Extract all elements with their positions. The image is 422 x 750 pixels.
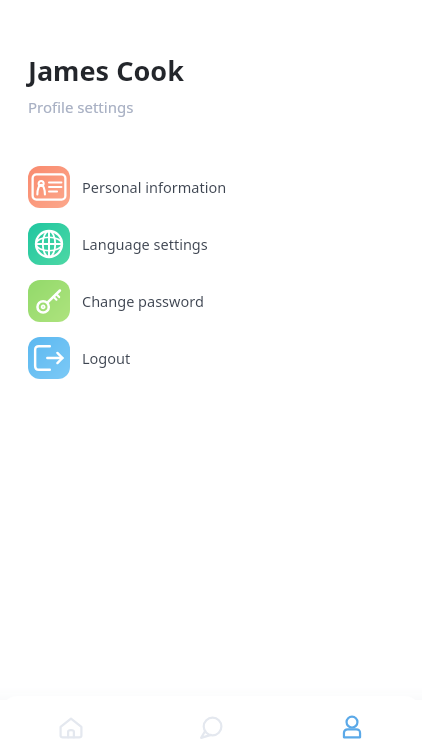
staticText: Language settings bbox=[82, 234, 208, 254]
button[interactable]: Home bbox=[1, 703, 141, 750]
staticText: Change password bbox=[82, 291, 204, 311]
button[interactable]: Personal information bbox=[0, 158, 422, 215]
button[interactable]: Language settings bbox=[0, 215, 422, 272]
button[interactable]: Messages bbox=[141, 703, 281, 750]
staticText: Logout bbox=[82, 348, 131, 368]
staticText: Profile settings bbox=[28, 97, 134, 117]
button[interactable]: Logout bbox=[0, 329, 422, 386]
staticText: James Cook bbox=[28, 52, 184, 89]
button[interactable]: Profile bbox=[282, 703, 422, 750]
staticText: Personal information bbox=[82, 177, 227, 197]
button[interactable]: Change password bbox=[0, 272, 422, 329]
